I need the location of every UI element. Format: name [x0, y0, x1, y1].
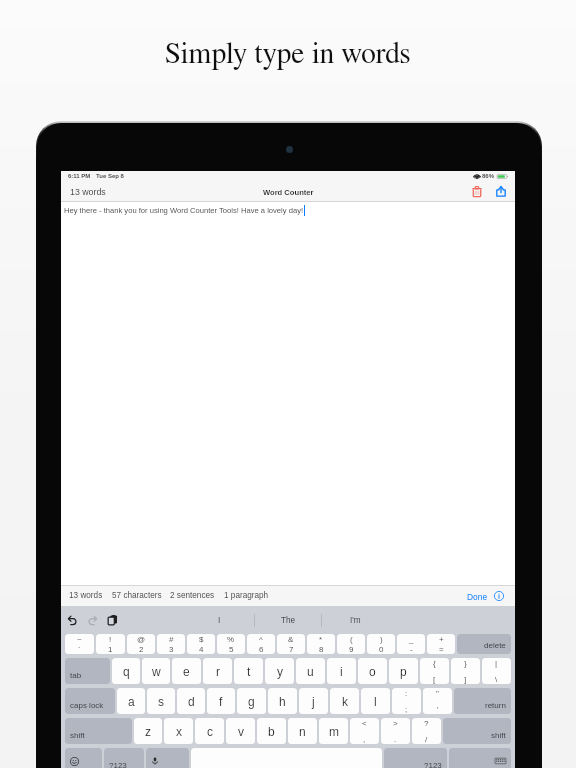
- button[interactable]: a: [117, 688, 145, 714]
- staticText: ~: [77, 635, 82, 644]
- staticText: ]: [464, 675, 467, 684]
- staticText: Word Counter: [263, 188, 314, 196]
- button[interactable]: I'm: [322, 606, 389, 634]
- button[interactable]: w: [142, 658, 170, 684]
- button[interactable]: ?123: [104, 748, 144, 768]
- staticText: {: [433, 659, 436, 668]
- staticText: m: [329, 725, 339, 738]
- staticText: w: [152, 665, 161, 678]
- staticText: ?123: [109, 761, 127, 768]
- staticText: delete: [484, 641, 506, 650]
- button[interactable]: &: [277, 634, 305, 654]
- button[interactable]: %: [217, 634, 245, 654]
- button[interactable]: ": [423, 688, 452, 714]
- button[interactable]: shift: [443, 718, 511, 744]
- staticText: v: [238, 725, 244, 738]
- button[interactable]: e: [172, 658, 201, 684]
- button[interactable]: return: [454, 688, 511, 714]
- staticText: g: [248, 695, 255, 708]
- staticText: #: [169, 635, 174, 644]
- button[interactable]: Paste: [108, 615, 117, 625]
- button[interactable]: p: [389, 658, 418, 684]
- button[interactable]: #: [157, 634, 185, 654]
- staticText: 57 characters: [112, 591, 162, 600]
- button[interactable]: ^: [247, 634, 275, 654]
- button[interactable]: *: [307, 634, 335, 654]
- button[interactable]: m: [319, 718, 348, 744]
- staticText: *: [319, 635, 323, 644]
- button[interactable]: [449, 748, 511, 768]
- button[interactable]: ?: [412, 718, 441, 744]
- button[interactable]: q: [112, 658, 140, 684]
- button[interactable]: o: [358, 658, 387, 684]
- staticText: n: [299, 725, 306, 738]
- button[interactable]: I: [186, 606, 253, 634]
- button[interactable]: Redo: [88, 616, 97, 625]
- staticText: 13 words: [69, 591, 103, 600]
- button[interactable]: [65, 748, 102, 768]
- button[interactable]: |: [482, 658, 511, 684]
- button[interactable]: ): [367, 634, 395, 654]
- button[interactable]: [146, 748, 189, 768]
- button[interactable]: delete: [457, 634, 511, 654]
- staticText: $: [199, 635, 204, 644]
- button[interactable]: The: [255, 606, 322, 634]
- button[interactable]: ~: [65, 634, 94, 654]
- staticText: =: [439, 645, 444, 654]
- staticText: Done: [467, 592, 488, 601]
- button[interactable]: ?123: [384, 748, 447, 768]
- button[interactable]: j: [299, 688, 328, 714]
- staticText: 6: [259, 645, 264, 654]
- button[interactable]: $: [187, 634, 215, 654]
- button[interactable]: y: [265, 658, 294, 684]
- button[interactable]: caps lock: [65, 688, 115, 714]
- staticText: ,: [363, 735, 366, 744]
- button[interactable]: h: [268, 688, 297, 714]
- button[interactable]: +: [427, 634, 455, 654]
- button[interactable]: x: [164, 718, 193, 744]
- staticText: 8: [319, 645, 324, 654]
- staticText: shift: [491, 731, 506, 740]
- button[interactable]: Delete: [469, 183, 485, 199]
- button[interactable]: _: [397, 634, 425, 654]
- button[interactable]: d: [177, 688, 205, 714]
- button[interactable]: !: [96, 634, 125, 654]
- staticText: s: [158, 695, 164, 708]
- button[interactable]: v: [226, 718, 255, 744]
- staticText: l: [374, 695, 377, 708]
- button[interactable]: {: [420, 658, 449, 684]
- button[interactable]: :: [392, 688, 421, 714]
- button[interactable]: Done: [467, 592, 488, 601]
- staticText: k: [342, 695, 348, 708]
- button[interactable]: l: [361, 688, 390, 714]
- button[interactable]: Undo: [68, 616, 77, 625]
- button[interactable]: (: [337, 634, 365, 654]
- button[interactable]: @: [127, 634, 155, 654]
- button[interactable]: c: [195, 718, 224, 744]
- button[interactable]: g: [237, 688, 266, 714]
- button[interactable]: i: [327, 658, 356, 684]
- button[interactable]: n: [288, 718, 317, 744]
- staticText: !: [109, 635, 112, 644]
- button[interactable]: r: [203, 658, 232, 684]
- button[interactable]: t: [234, 658, 263, 684]
- button[interactable]: f: [207, 688, 235, 714]
- button[interactable]: shift: [65, 718, 132, 744]
- button[interactable]: Share: [493, 183, 509, 199]
- staticText: [: [433, 675, 436, 684]
- staticText: 13 words: [70, 187, 106, 197]
- button[interactable]: }: [451, 658, 480, 684]
- staticText: Simply type in words: [165, 39, 411, 69]
- staticText: r: [216, 665, 220, 678]
- button[interactable]: tab: [65, 658, 110, 684]
- button[interactable]: s: [147, 688, 175, 714]
- button[interactable]: z: [134, 718, 162, 744]
- button[interactable]: <: [350, 718, 379, 744]
- button[interactable]: >: [381, 718, 410, 744]
- button[interactable]: Info: [494, 591, 504, 601]
- button[interactable]: k: [330, 688, 359, 714]
- button[interactable]: b: [257, 718, 286, 744]
- button[interactable]: u: [296, 658, 325, 684]
- staticText: 86%: [482, 173, 495, 180]
